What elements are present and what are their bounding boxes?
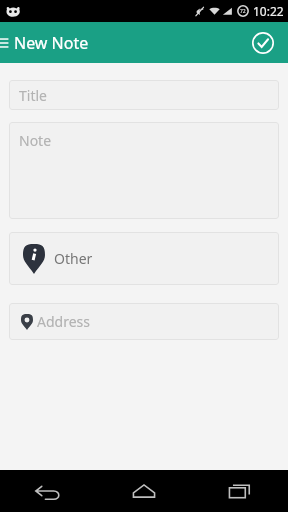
button[interactable]: Home (96, 470, 192, 512)
staticText: Address (37, 312, 90, 331)
staticText: Note (19, 131, 52, 150)
staticText: Other (54, 249, 93, 268)
button[interactable]: Other (9, 232, 279, 285)
button[interactable]: Title (9, 80, 279, 110)
button[interactable]: Back (0, 470, 96, 512)
staticText: Title (19, 86, 47, 105)
button[interactable]: Recent apps (192, 470, 288, 512)
staticText: 72 (240, 8, 246, 15)
button[interactable]: Note (9, 122, 279, 219)
staticText: New Note (14, 32, 89, 54)
button[interactable]: Open navigation menu (0, 25, 14, 61)
staticText: 10:22 (253, 3, 284, 19)
button[interactable]: Save note (246, 26, 280, 60)
button[interactable]: Address (9, 303, 279, 340)
